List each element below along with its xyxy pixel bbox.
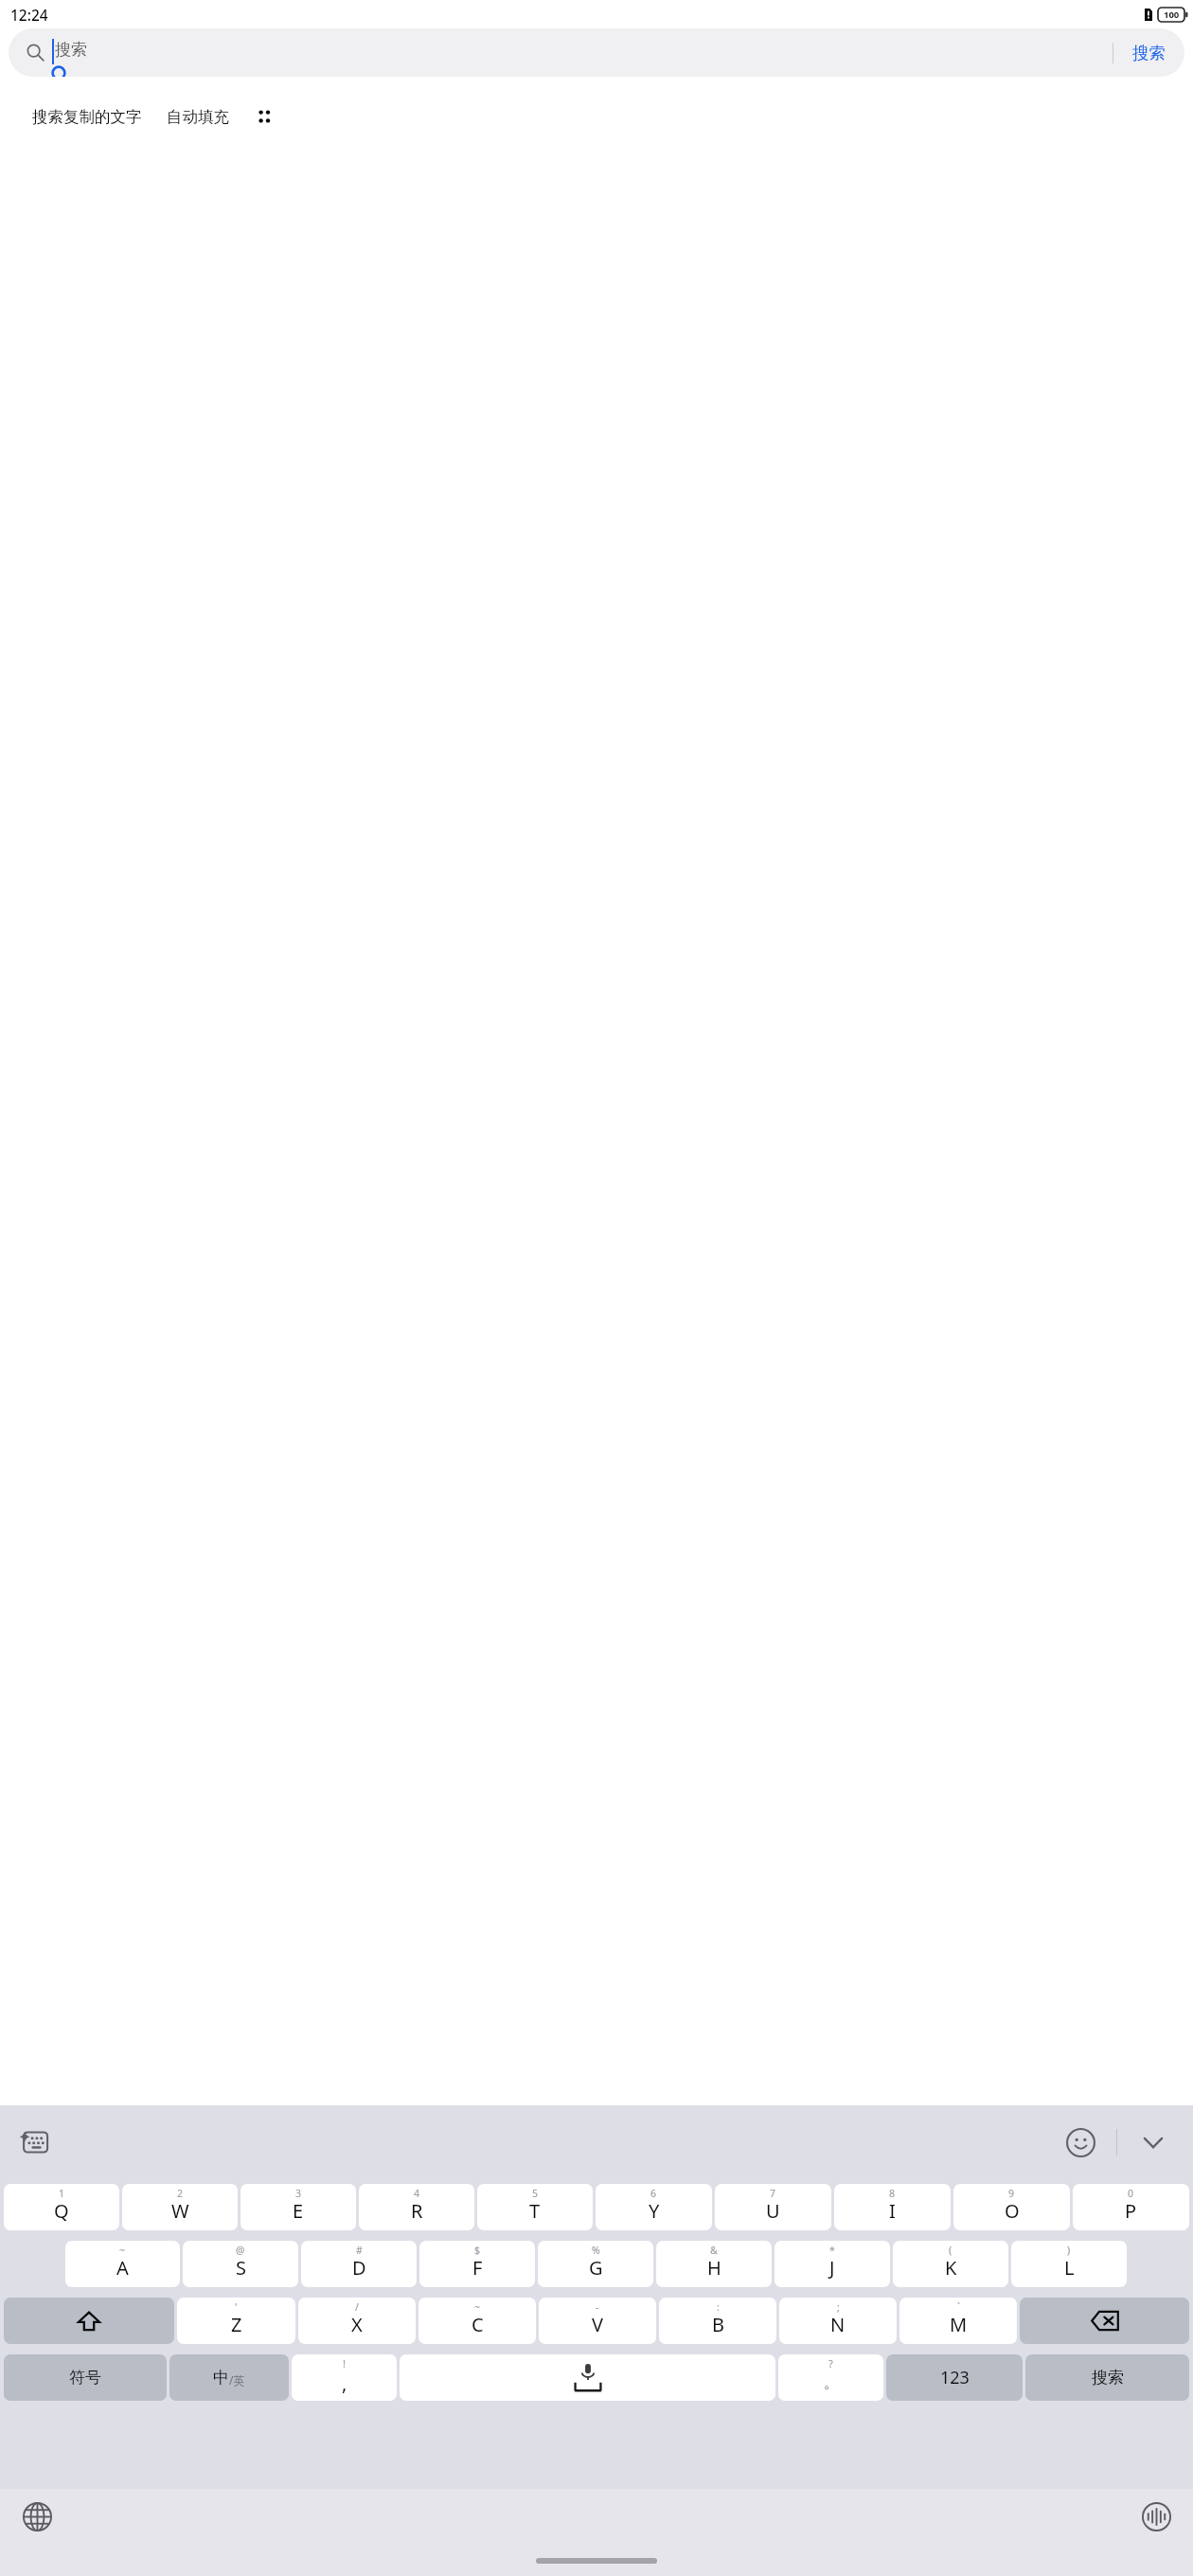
- staticText: 1: [59, 2187, 65, 2200]
- button[interactable]: 0: [1073, 2184, 1189, 2230]
- staticText: 6: [650, 2187, 657, 2200]
- staticText: D: [352, 2255, 366, 2281]
- button[interactable]: Space: [400, 2354, 775, 2401]
- button[interactable]: 搜索: [1113, 28, 1184, 77]
- button[interactable]: 123: [886, 2354, 1023, 2401]
- staticText: I: [889, 2198, 896, 2224]
- staticText: R: [411, 2198, 423, 2224]
- button[interactable]: Change language: [15, 2495, 59, 2538]
- staticText: 搜索复制的文字: [32, 107, 142, 127]
- staticText: A: [116, 2255, 129, 2281]
- button[interactable]: Voice input: [1134, 2495, 1178, 2538]
- button[interactable]: :: [659, 2298, 776, 2344]
- button[interactable]: Hide keyboard: [1131, 2120, 1176, 2165]
- button[interactable]: 2: [122, 2184, 238, 2230]
- staticText: 符号: [69, 2368, 101, 2388]
- staticText: 8: [889, 2187, 896, 2200]
- button[interactable]: Backspace: [1020, 2298, 1189, 2344]
- staticText: #: [356, 2244, 363, 2257]
- button[interactable]: @: [183, 2241, 298, 2287]
- staticText: Q: [54, 2198, 69, 2224]
- button[interactable]: /: [298, 2298, 416, 2344]
- button[interactable]: $: [419, 2241, 535, 2287]
- staticText: L: [1064, 2255, 1075, 2281]
- staticText: (: [949, 2244, 953, 2257]
- staticText: 12:24: [10, 5, 48, 25]
- button[interactable]: ?: [778, 2354, 883, 2401]
- button[interactable]: 1: [4, 2184, 119, 2230]
- staticText: 123: [940, 2366, 970, 2389]
- staticText: O: [1005, 2198, 1020, 2224]
- button[interactable]: Emoji: [1058, 2120, 1103, 2165]
- button[interactable]: 7: [715, 2184, 831, 2230]
- button[interactable]: 6: [596, 2184, 712, 2230]
- button[interactable]: More options: [248, 100, 280, 133]
- staticText: ': [235, 2300, 238, 2314]
- staticText: N: [830, 2312, 846, 2337]
- staticText: 2: [177, 2187, 184, 2200]
- staticText: T: [529, 2198, 541, 2224]
- staticText: *: [829, 2244, 835, 2257]
- staticText: `: [957, 2300, 960, 2314]
- staticText: :: [717, 2300, 720, 2314]
- button[interactable]: *: [775, 2241, 890, 2287]
- staticText: ,: [342, 2370, 347, 2396]
- button[interactable]: 4: [359, 2184, 474, 2230]
- staticText: K: [945, 2255, 957, 2281]
- staticText: F: [472, 2255, 483, 2281]
- button[interactable]: 搜索: [1025, 2354, 1189, 2401]
- button[interactable]: %: [538, 2241, 653, 2287]
- button[interactable]: ~: [65, 2241, 180, 2287]
- staticText: $: [474, 2244, 481, 2257]
- staticText: 5: [532, 2187, 539, 2200]
- staticText: %: [592, 2244, 600, 2257]
- button[interactable]: (: [893, 2241, 1008, 2287]
- staticText: -: [596, 2300, 599, 2314]
- button[interactable]: !: [292, 2354, 397, 2401]
- staticText: 搜索: [1092, 2368, 1124, 2388]
- button[interactable]: `: [899, 2298, 1017, 2344]
- staticText: 搜索: [1132, 43, 1166, 63]
- staticText: @: [236, 2244, 245, 2257]
- staticText: U: [766, 2198, 780, 2224]
- staticText: W: [171, 2198, 189, 2224]
- button[interactable]: &: [656, 2241, 772, 2287]
- button[interactable]: ~: [418, 2298, 536, 2344]
- staticText: P: [1125, 2198, 1137, 2224]
- button[interactable]: 搜索: [9, 28, 1184, 77]
- staticText: 100: [1164, 9, 1180, 21]
- staticText: G: [589, 2255, 603, 2281]
- button[interactable]: 中: [169, 2354, 289, 2401]
- staticText: E: [293, 2198, 304, 2224]
- staticText: 0: [1128, 2187, 1134, 2200]
- button[interactable]: 3: [240, 2184, 356, 2230]
- button[interactable]: ': [177, 2298, 295, 2344]
- button[interactable]: 8: [834, 2184, 951, 2230]
- button[interactable]: -: [539, 2298, 656, 2344]
- staticText: ?: [828, 2356, 833, 2370]
- staticText: J: [829, 2255, 835, 2281]
- button[interactable]: #: [301, 2241, 417, 2287]
- staticText: V: [592, 2312, 603, 2337]
- staticText: C: [472, 2312, 484, 2337]
- button[interactable]: 搜索复制的文字: [14, 92, 288, 141]
- button[interactable]: Shift: [4, 2298, 174, 2344]
- staticText: 。: [824, 2374, 838, 2392]
- staticText: H: [707, 2255, 721, 2281]
- staticText: ): [1067, 2244, 1071, 2257]
- staticText: Y: [649, 2198, 660, 2224]
- staticText: 3: [295, 2187, 302, 2200]
- staticText: 7: [770, 2187, 776, 2200]
- button[interactable]: AI keyboard: [12, 2120, 56, 2164]
- button[interactable]: 5: [477, 2184, 593, 2230]
- button[interactable]: 符号: [4, 2354, 167, 2401]
- button[interactable]: 9: [953, 2184, 1070, 2230]
- staticText: ;: [837, 2300, 840, 2314]
- staticText: /: [355, 2300, 359, 2314]
- staticText: 搜索: [55, 40, 87, 60]
- staticText: X: [351, 2312, 363, 2337]
- staticText: &: [710, 2244, 718, 2257]
- staticText: !: [343, 2356, 346, 2370]
- button[interactable]: ): [1011, 2241, 1127, 2287]
- button[interactable]: ;: [779, 2298, 897, 2344]
